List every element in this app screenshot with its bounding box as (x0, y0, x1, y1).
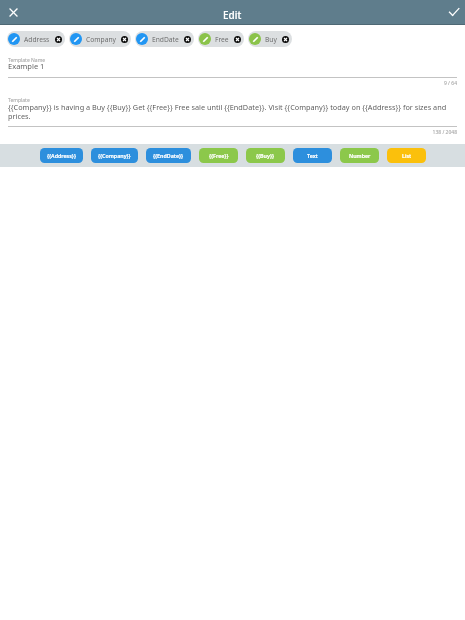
staticText: List (402, 152, 412, 159)
button[interactable]: Buy (248, 31, 292, 47)
staticText: {{Free}} (209, 152, 229, 159)
staticText: Number (349, 152, 371, 159)
button[interactable]: {{Company}} (91, 148, 138, 163)
button[interactable]: {{Buy}} (246, 148, 285, 163)
staticText: Free (215, 35, 229, 44)
button[interactable]: Address (7, 31, 65, 47)
button[interactable]: List (387, 148, 426, 163)
other: Remove Free (234, 36, 241, 43)
button[interactable]: {{Address}} (40, 148, 83, 163)
staticText: 138 / 2048 (8, 129, 457, 136)
staticText: Address (24, 35, 50, 44)
staticText: Text (307, 152, 318, 159)
staticText: Template (8, 97, 30, 104)
staticText: Example 1 (8, 61, 457, 71)
staticText: {{EndDate}} (153, 152, 184, 159)
other: Remove Company (121, 36, 128, 43)
staticText: 9 / 64 (8, 80, 457, 87)
other: Remove Address (55, 36, 62, 43)
button[interactable]: Number (340, 148, 379, 163)
button[interactable]: Free (198, 31, 244, 47)
button[interactable]: Company (69, 31, 131, 47)
button[interactable]: Save (444, 2, 464, 22)
staticText: Company (86, 35, 116, 44)
other: Remove EndDate (184, 36, 191, 43)
staticText: Buy (265, 35, 277, 44)
button[interactable]: Close (3, 2, 23, 22)
staticText: EndDate (152, 35, 179, 44)
staticText: Template Name (8, 57, 46, 64)
button[interactable]: Text (293, 148, 332, 163)
staticText: {{Company}} (98, 152, 131, 159)
staticText: Edit (223, 8, 242, 22)
staticText: {{Buy}} (256, 152, 275, 159)
button[interactable]: EndDate (135, 31, 194, 47)
button[interactable]: {{EndDate}} (146, 148, 191, 163)
staticText: {{Company}} is having a Buy {{Buy}} Get … (8, 102, 457, 121)
button[interactable]: {{Free}} (199, 148, 238, 163)
other: Remove Buy (282, 36, 289, 43)
staticText: {{Address}} (47, 152, 76, 159)
